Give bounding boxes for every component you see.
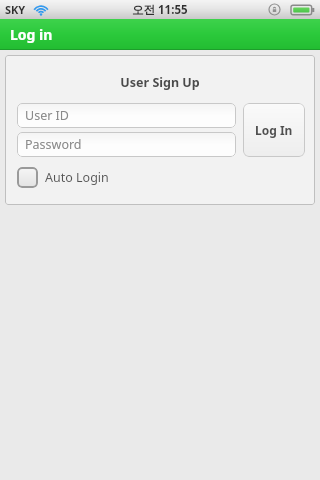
- staticText: Log in: [10, 25, 53, 44]
- staticText: Log In: [255, 122, 293, 138]
- staticText: SKY: [5, 2, 26, 17]
- button[interactable]: Log In: [243, 103, 305, 157]
- staticText: Auto Login: [45, 169, 109, 186]
- staticText: 오전 11:55: [132, 2, 188, 18]
- staticText: Password: [25, 136, 82, 153]
- button[interactable]: Password: [17, 132, 236, 157]
- button[interactable]: User ID: [17, 103, 236, 128]
- other: Auto Login checkbox: [17, 167, 38, 188]
- button[interactable]: Auto Login checkbox: [17, 167, 109, 188]
- staticText: User Sign Up: [120, 74, 200, 91]
- staticText: User ID: [25, 107, 69, 124]
